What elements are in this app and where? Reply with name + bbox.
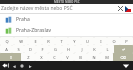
button[interactable]: H — [62, 45, 75, 53]
staticText: I — [100, 39, 102, 44]
button[interactable]: W — [14, 37, 28, 45]
button[interactable]: Hide keyboard — [1, 61, 10, 70]
button[interactable]: Collapse — [121, 61, 130, 70]
button[interactable]: Back — [10, 62, 18, 70]
button[interactable]: S — [12, 45, 24, 53]
staticText: V — [66, 55, 69, 60]
button[interactable]: J — [75, 45, 88, 53]
staticText: Praha-Zbraslav — [16, 27, 52, 34]
button[interactable]: Language — [124, 5, 131, 12]
button[interactable]: A — [0, 45, 12, 53]
staticText: H — [67, 47, 70, 52]
button[interactable]: G — [49, 45, 62, 53]
staticText: X — [40, 55, 43, 60]
button[interactable]: Recents — [26, 62, 34, 70]
button[interactable]: X — [35, 53, 48, 61]
staticText: K — [93, 47, 96, 52]
staticText: Zadejte název města nebo PSČ — [1, 5, 73, 12]
staticText: U — [86, 39, 89, 44]
button[interactable]: N — [87, 53, 100, 61]
staticText: M — [105, 55, 109, 60]
button[interactable]: Z — [21, 53, 35, 61]
staticText: Z — [27, 55, 30, 60]
button[interactable]: U — [81, 37, 94, 45]
staticText: ⇧ — [9, 55, 13, 60]
staticText: Praha — [16, 16, 30, 23]
staticText: Y — [73, 39, 76, 44]
button[interactable]: L — [101, 45, 114, 53]
staticText: G — [54, 47, 57, 52]
staticText: L — [106, 47, 109, 52]
staticText: O — [112, 39, 116, 44]
button[interactable]: K — [88, 45, 101, 53]
staticText: S — [17, 47, 20, 52]
button[interactable]: E — [28, 37, 42, 45]
button[interactable]: P — [120, 37, 133, 45]
staticText: Q — [5, 39, 9, 44]
staticText: P — [125, 39, 128, 44]
staticText: A — [5, 47, 8, 52]
button[interactable]: I — [94, 37, 107, 45]
button[interactable]: M — [100, 53, 113, 61]
staticText: W — [19, 39, 23, 44]
staticText: N — [92, 55, 96, 60]
button[interactable]: Praha — [0, 14, 133, 25]
button[interactable]: ⇧ — [0, 53, 21, 61]
staticText: ◂ — [13, 63, 16, 69]
button[interactable]: F — [36, 45, 49, 53]
staticText: E — [34, 39, 37, 44]
staticText: B — [79, 55, 82, 60]
button[interactable]: R — [42, 37, 55, 45]
staticText: J — [81, 47, 83, 52]
staticText: F — [41, 47, 44, 52]
staticText: T — [60, 39, 63, 44]
button[interactable]: V — [61, 53, 74, 61]
staticText: ⌫ — [120, 55, 126, 60]
staticText: ▸ — [29, 63, 32, 69]
button[interactable]: Y — [68, 37, 81, 45]
staticText: C — [53, 55, 56, 60]
button[interactable]: ⌫ — [113, 53, 133, 61]
button[interactable]: D — [24, 45, 36, 53]
staticText: D — [29, 47, 32, 52]
button[interactable]: Q — [0, 37, 14, 45]
button[interactable]: C — [48, 53, 61, 61]
staticText: R — [47, 39, 50, 44]
staticText: ↵ — [122, 47, 126, 52]
button[interactable]: T — [55, 37, 68, 45]
button[interactable]: B — [74, 53, 87, 61]
staticText: MĚSTO NEBO PSČ — [54, 0, 80, 4]
button[interactable]: Clear — [117, 5, 124, 12]
button[interactable]: Home — [18, 62, 26, 70]
button[interactable]: ↵ — [114, 45, 133, 53]
button[interactable]: Praha-Zbraslav — [0, 25, 133, 36]
button[interactable]: O — [107, 37, 120, 45]
